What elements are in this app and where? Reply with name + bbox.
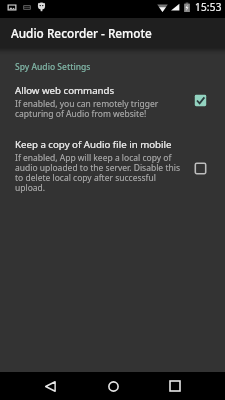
button[interactable]: Back <box>19 372 82 400</box>
staticText: If enabled, App will keep a local copy o… <box>15 152 187 193</box>
staticText: Audio Recorder - Remote <box>11 25 152 41</box>
button[interactable]: Allow web commands <box>0 84 225 119</box>
button[interactable]: Keep a copy of Audio file in mobile <box>0 138 225 193</box>
button[interactable]: Enabled <box>189 87 225 117</box>
staticText: 15:53 <box>195 0 222 14</box>
staticText: Spy Audio Settings <box>15 61 91 73</box>
staticText: Keep a copy of Audio file in mobile <box>15 138 172 151</box>
button[interactable]: Disabled <box>189 151 225 181</box>
staticText: If enabled, you can remotely trigger cap… <box>15 98 187 119</box>
staticText: Allow web commands <box>15 84 115 97</box>
button[interactable]: Home <box>82 372 144 400</box>
button[interactable]: Recent apps <box>144 372 206 400</box>
